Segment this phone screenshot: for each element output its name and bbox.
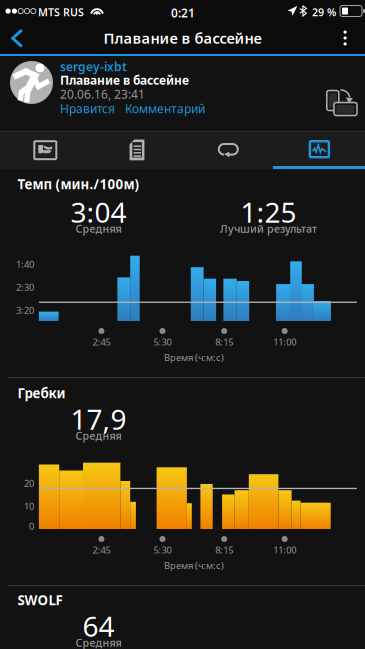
staticText: 20.06.16, 23:41 <box>60 86 145 102</box>
button[interactable]: sergey-ixbt <box>60 60 127 73</box>
button[interactable]: Details <box>91 131 182 169</box>
button[interactable]: Комментарий <box>125 102 205 115</box>
staticText: 10 <box>24 500 34 512</box>
staticText: Лучший результат <box>220 221 317 236</box>
staticText: MTS RUS <box>38 5 84 19</box>
staticText: Темп (мин./100м) <box>17 175 139 193</box>
button[interactable]: Нравится <box>60 102 115 115</box>
staticText: 0:21 <box>171 5 195 21</box>
staticText: 11:00 <box>273 336 296 348</box>
button[interactable]: More options <box>329 22 365 54</box>
staticText: Плавание в бассейне <box>103 28 261 48</box>
staticText: 5:30 <box>153 544 171 556</box>
staticText: 2:45 <box>92 336 110 348</box>
staticText: Время (ч:м:с) <box>164 351 224 364</box>
staticText: 1:25 <box>240 193 296 231</box>
staticText: Гребки <box>17 384 65 402</box>
button[interactable]: Charts <box>273 131 365 169</box>
staticText: 2:45 <box>92 544 110 556</box>
staticText: 3:20 <box>16 304 34 316</box>
staticText: 20 <box>24 477 34 489</box>
staticText: 8:15 <box>215 336 233 348</box>
staticText: sergey-ixbt <box>60 58 127 74</box>
staticText: Средняя <box>75 635 121 649</box>
button[interactable]: Laps <box>182 131 273 169</box>
staticText: Средняя <box>75 221 121 236</box>
staticText: Плавание в бассейне <box>60 72 189 88</box>
staticText: 1:40 <box>16 258 34 270</box>
staticText: SWOLF <box>17 591 62 609</box>
staticText: 29 % <box>312 5 336 19</box>
staticText: 2:30 <box>16 281 34 293</box>
staticText: 11:00 <box>273 544 296 556</box>
staticText: 8:15 <box>215 544 233 556</box>
button[interactable]: Rotate device <box>322 86 362 120</box>
staticText: 0 <box>29 520 34 532</box>
staticText: 5:30 <box>153 336 171 348</box>
staticText: 64 <box>82 607 114 645</box>
button[interactable]: Map <box>0 131 91 169</box>
staticText: Нравится <box>60 100 115 116</box>
button[interactable]: Back <box>0 22 36 54</box>
staticText: 17,9 <box>70 400 126 438</box>
staticText: Комментарий <box>125 100 205 116</box>
staticText: Время (ч:м:с) <box>164 559 224 572</box>
staticText: 3:04 <box>70 193 126 231</box>
staticText: Средняя <box>75 428 121 443</box>
